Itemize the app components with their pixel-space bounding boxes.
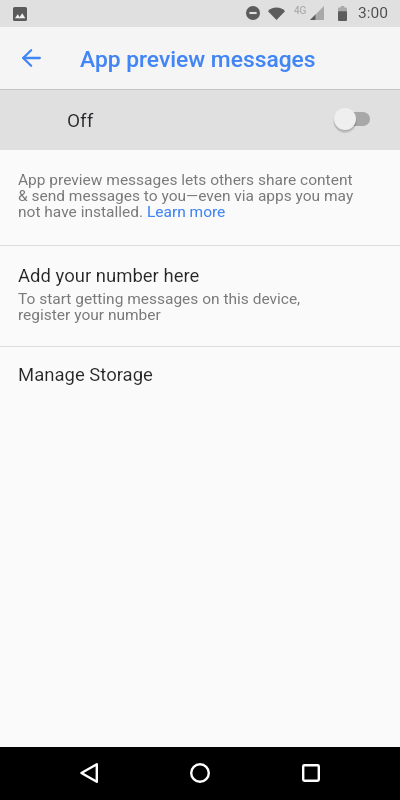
button[interactable]: Off xyxy=(0,90,400,150)
button[interactable]: Manage Storage xyxy=(0,347,400,403)
button[interactable]: Add your number here xyxy=(0,246,400,346)
staticText: App preview messages lets others share c… xyxy=(18,172,354,220)
button[interactable]: Recent apps xyxy=(287,749,335,797)
button[interactable]: Navigate up xyxy=(8,35,54,81)
button[interactable]: Home xyxy=(176,749,224,797)
staticText: 3:00 xyxy=(358,4,388,22)
staticText: Manage Storage xyxy=(18,364,153,386)
staticText: To start getting messages on this device… xyxy=(18,291,310,323)
staticText: Off xyxy=(67,109,94,131)
button[interactable]: Back xyxy=(65,749,113,797)
staticText: Add your number here xyxy=(18,267,200,286)
staticText: 4G xyxy=(294,5,307,17)
staticText: App preview messages xyxy=(80,46,316,73)
